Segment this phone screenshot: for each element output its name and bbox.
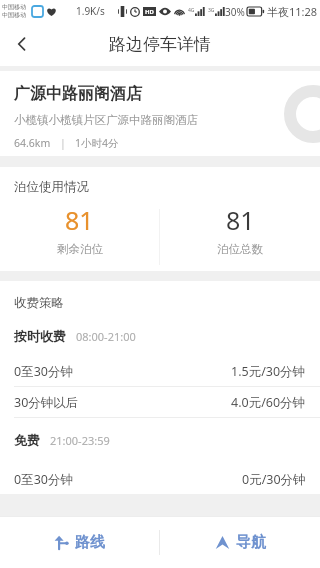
staticText: 中国移动	[2, 11, 26, 19]
staticText: 0至30分钟	[14, 363, 73, 380]
staticText: 剩余泊位	[57, 242, 103, 256]
button[interactable]: 广源中路丽阁酒店	[0, 71, 320, 156]
staticText: 3G	[208, 7, 215, 14]
staticText: 64.6km	[14, 136, 51, 150]
staticText: 广源中路丽阁酒店	[14, 84, 142, 104]
staticText: 08:00-21:00	[76, 329, 136, 344]
staticText: 导航	[236, 533, 266, 552]
button[interactable]: 30分钟以后	[0, 387, 320, 417]
staticText: 免费	[14, 432, 40, 448]
staticText: 4.0元/60分钟	[231, 394, 306, 411]
staticText: 4G	[188, 7, 195, 14]
staticText: 1.9K/s	[76, 4, 105, 18]
staticText: 小榄镇小榄镇片区广源中路丽阁酒店	[14, 113, 198, 127]
button[interactable]: 0至30分钟	[0, 356, 320, 386]
staticText: 泊位使用情况	[14, 179, 89, 195]
button[interactable]: 0至30分钟	[0, 464, 320, 494]
staticText: 1小时4分	[75, 136, 119, 150]
staticText: 路边停车详情	[109, 34, 211, 55]
staticText: 30%	[225, 5, 245, 19]
staticText: 0元/30分钟	[242, 471, 306, 488]
staticText: 1.5元/30分钟	[231, 363, 306, 380]
staticText: HD	[145, 8, 154, 16]
staticText: 81	[226, 203, 255, 237]
staticText: 30分钟以后	[14, 394, 79, 411]
button[interactable]: Back	[0, 22, 44, 66]
staticText: 泊位总数	[217, 242, 263, 256]
button[interactable]: 导航	[160, 517, 320, 568]
staticText: 路线	[75, 533, 105, 552]
staticText: 81	[65, 203, 94, 237]
staticText: 半夜11:28	[267, 4, 318, 19]
staticText: 0至30分钟	[14, 471, 73, 488]
staticText: 21:00-23:59	[50, 433, 110, 448]
staticText: 收费策略	[14, 295, 64, 311]
staticText: 中国移动	[2, 3, 26, 11]
staticText: 按时收费	[14, 328, 66, 344]
staticText: |	[60, 136, 66, 150]
button[interactable]: 路线	[0, 517, 159, 568]
